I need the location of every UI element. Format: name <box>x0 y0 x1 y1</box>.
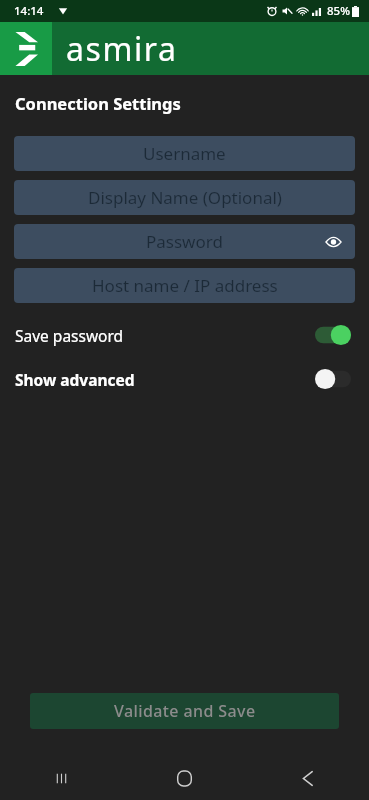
button[interactable]: Home <box>123 756 246 800</box>
staticText: Show advanced <box>15 369 135 390</box>
staticText: Connection Settings <box>15 92 181 114</box>
button[interactable]: Show password <box>323 232 343 252</box>
button[interactable]: Back <box>246 756 369 800</box>
staticText: 14:14 <box>14 3 44 19</box>
staticText: Username <box>143 142 226 165</box>
button[interactable]: Display Name (Optional) <box>14 180 355 215</box>
staticText: asmira <box>66 27 178 71</box>
button[interactable]: asmira logo <box>0 22 52 75</box>
staticText: Display Name (Optional) <box>88 186 282 209</box>
staticText: Validate and Save <box>114 700 256 722</box>
staticText: Password <box>146 230 223 253</box>
staticText: 85% <box>327 3 350 19</box>
button[interactable]: Password <box>14 224 355 259</box>
button[interactable]: Recent apps <box>0 756 123 800</box>
button[interactable]: Username <box>14 136 355 171</box>
button[interactable]: Validate and Save <box>30 693 339 729</box>
staticText: Host name / IP address <box>92 274 278 297</box>
button[interactable]: Show advanced <box>0 364 369 394</box>
button[interactable]: Host name / IP address <box>14 268 355 303</box>
button[interactable]: Save password <box>0 320 369 350</box>
staticText: Save password <box>15 325 124 346</box>
